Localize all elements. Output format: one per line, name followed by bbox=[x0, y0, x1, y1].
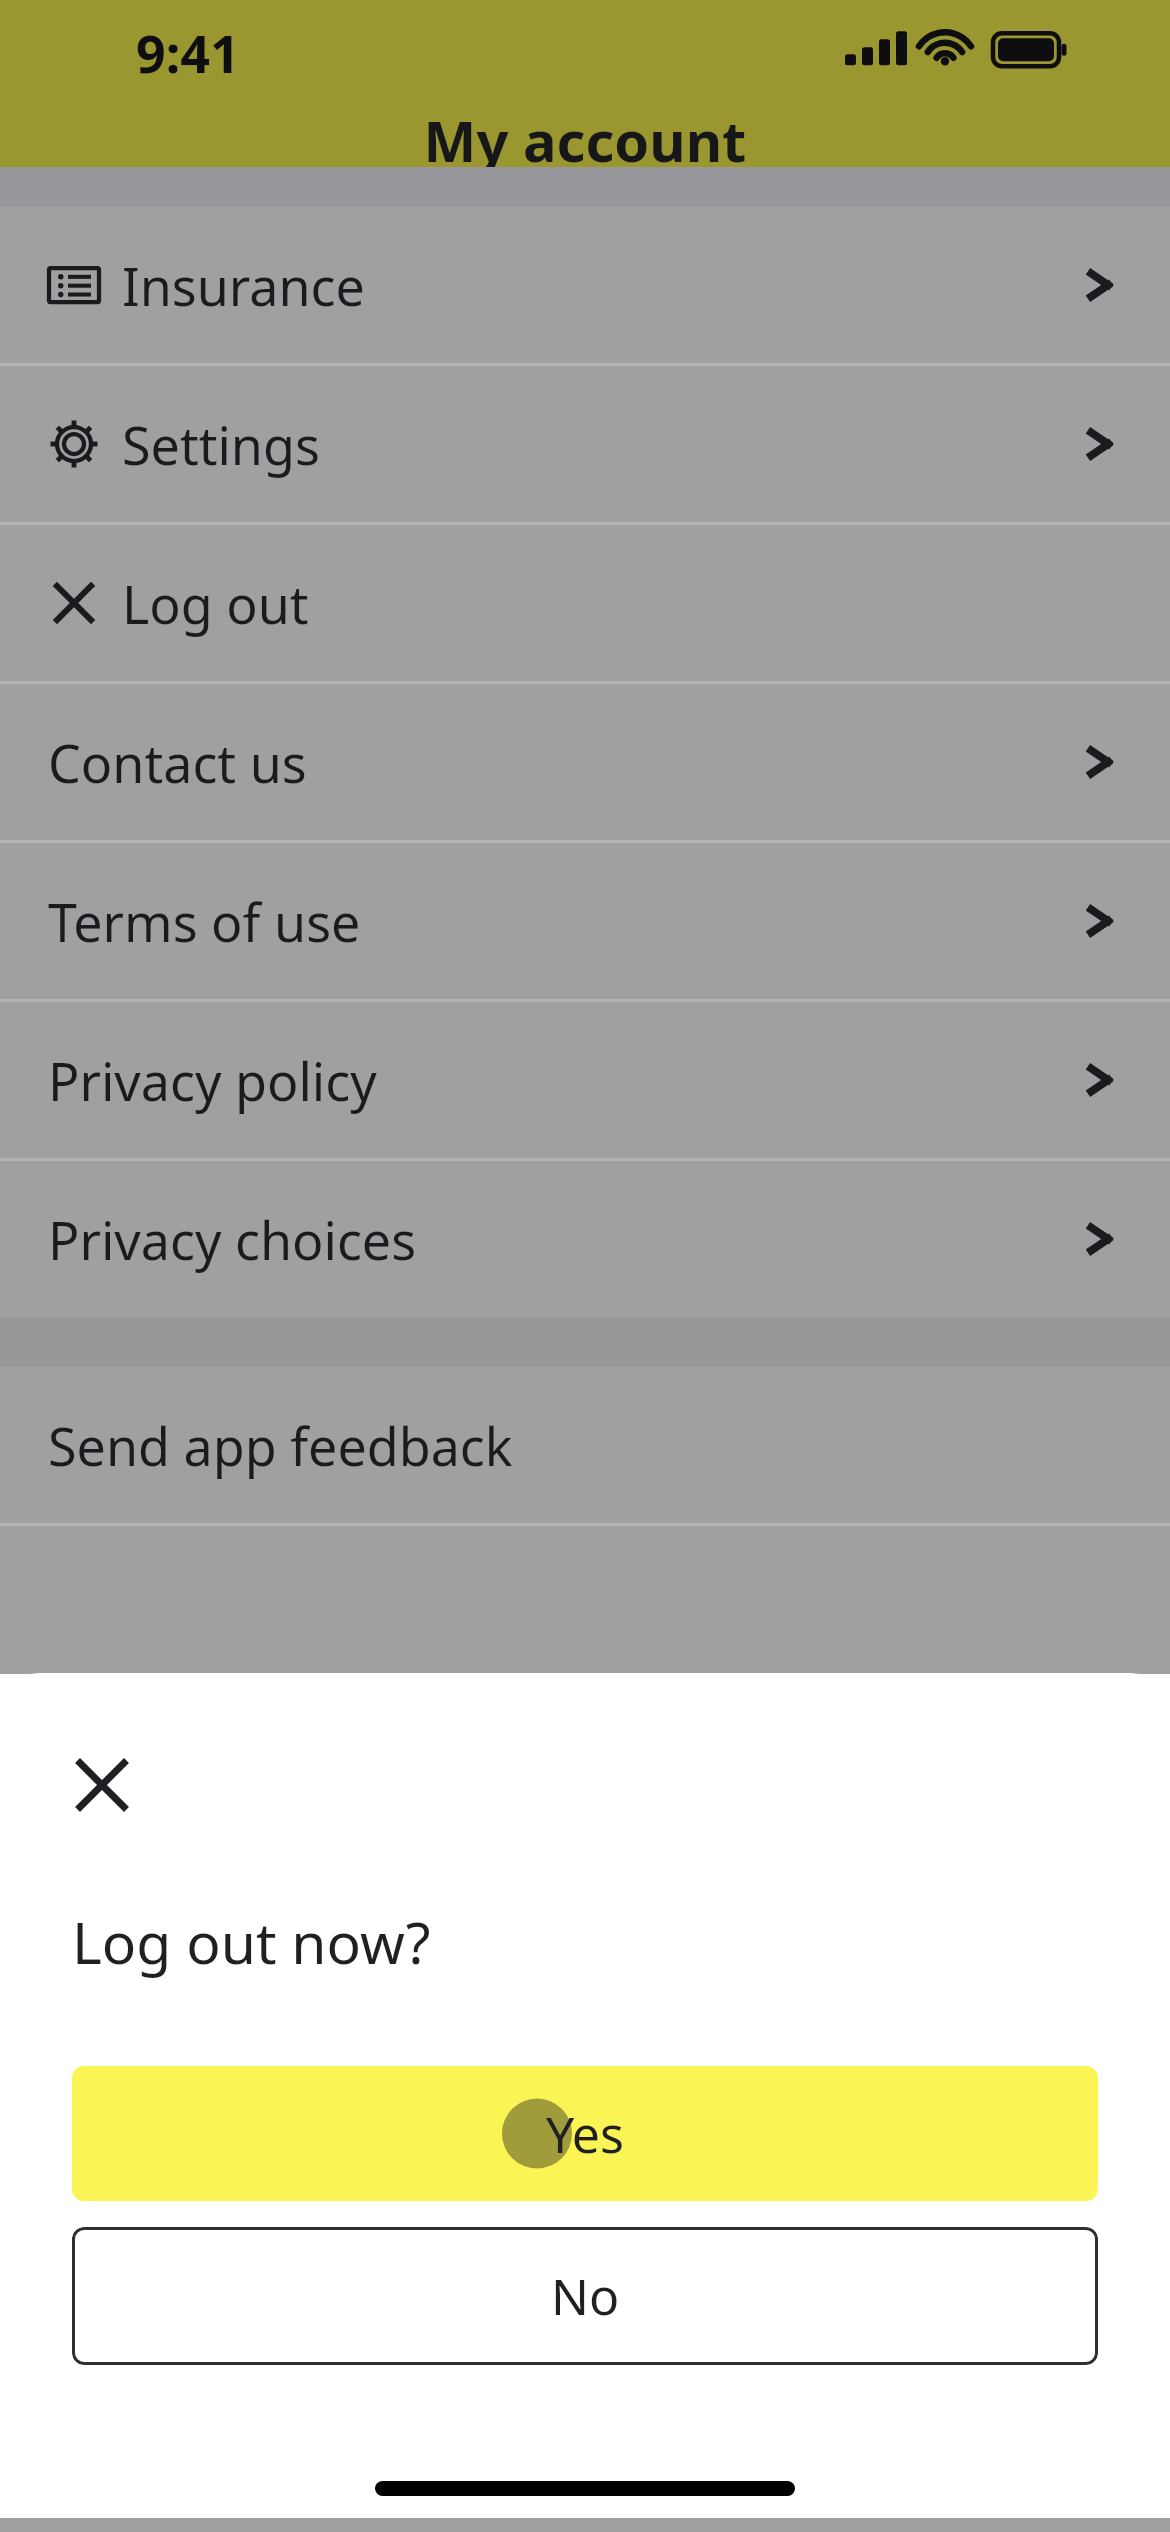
staticText: 9:41 bbox=[136, 17, 240, 88]
staticText: Privacy policy bbox=[48, 1045, 1076, 1116]
button[interactable]: Send app feedback bbox=[0, 1367, 1170, 1523]
button[interactable]: Terms of use bbox=[0, 843, 1170, 999]
button[interactable]: Privacy policy bbox=[0, 1002, 1170, 1158]
staticText: Yes bbox=[546, 2100, 624, 2168]
button[interactable]: Privacy choices bbox=[0, 1161, 1170, 1317]
staticText: Terms of use bbox=[48, 886, 1076, 957]
staticText: Log out now? bbox=[72, 1903, 431, 1981]
button[interactable]: Contact us bbox=[0, 684, 1170, 840]
button[interactable]: Log out bbox=[0, 525, 1170, 681]
button[interactable]: Yes bbox=[72, 2066, 1098, 2201]
button[interactable]: Close bbox=[62, 1745, 142, 1825]
staticText: Contact us bbox=[48, 727, 1076, 798]
button[interactable]: Insurance bbox=[0, 207, 1170, 363]
staticText: Send app feedback bbox=[48, 1410, 1122, 1481]
staticText: My account bbox=[0, 102, 1170, 178]
button[interactable]: Settings bbox=[0, 366, 1170, 522]
staticText: Settings bbox=[122, 409, 1076, 480]
staticText: Log out bbox=[122, 568, 1122, 639]
button[interactable]: No bbox=[72, 2227, 1098, 2365]
staticText: Insurance bbox=[122, 250, 1076, 321]
staticText: No bbox=[551, 2262, 620, 2330]
staticText: Privacy choices bbox=[48, 1204, 1076, 1275]
